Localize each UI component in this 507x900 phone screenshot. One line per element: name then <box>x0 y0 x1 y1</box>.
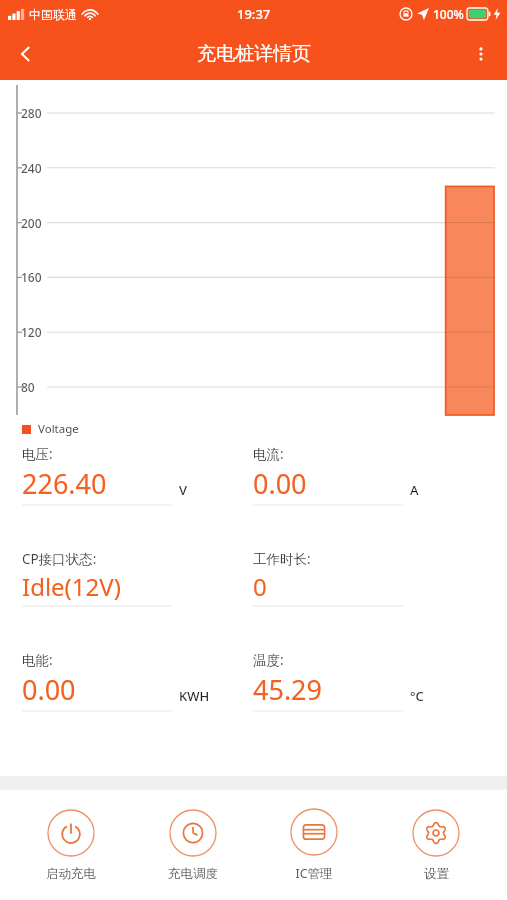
staticText: 温度: <box>253 651 284 669</box>
staticText: 200 <box>21 215 42 231</box>
staticText: 电流: <box>253 445 284 463</box>
staticText: 充电桩详情页 <box>197 42 311 66</box>
staticText: Idle(12V) <box>22 570 121 603</box>
staticText: V <box>179 481 187 499</box>
staticText: IC管理 <box>295 865 333 882</box>
staticText: CP接口状态: <box>22 550 97 568</box>
staticText: 工作时长: <box>253 550 311 568</box>
staticText: 0 <box>253 570 267 603</box>
staticText: 电压: <box>22 445 53 463</box>
button[interactable]: 设置 <box>386 805 486 886</box>
staticText: 240 <box>21 160 42 176</box>
staticText: 中国联通 <box>29 7 77 22</box>
staticText: Voltage <box>38 421 79 437</box>
button[interactable]: 启动充电 <box>21 805 121 886</box>
button[interactable]: IC管理 <box>264 804 364 886</box>
staticText: 160 <box>21 269 42 285</box>
staticText: 226.40 <box>22 465 107 502</box>
staticText: A <box>410 481 419 499</box>
button[interactable]: Back <box>0 28 52 80</box>
staticText: °C <box>410 687 424 705</box>
staticText: 45.29 <box>253 671 323 708</box>
staticText: 19:37 <box>237 5 271 23</box>
staticText: 120 <box>21 324 42 340</box>
staticText: 100% <box>433 6 464 22</box>
button[interactable]: More options <box>455 28 507 80</box>
staticText: 电能: <box>22 651 53 669</box>
staticText: KWH <box>179 687 210 705</box>
staticText: 充电调度 <box>168 866 218 882</box>
staticText: 0.00 <box>22 671 76 708</box>
staticText: 0.00 <box>253 465 307 502</box>
staticText: 设置 <box>424 866 449 882</box>
staticText: 80 <box>21 379 35 395</box>
staticText: 启动充电 <box>46 866 96 882</box>
staticText: 280 <box>21 105 42 121</box>
button[interactable]: 充电调度 <box>143 805 243 886</box>
